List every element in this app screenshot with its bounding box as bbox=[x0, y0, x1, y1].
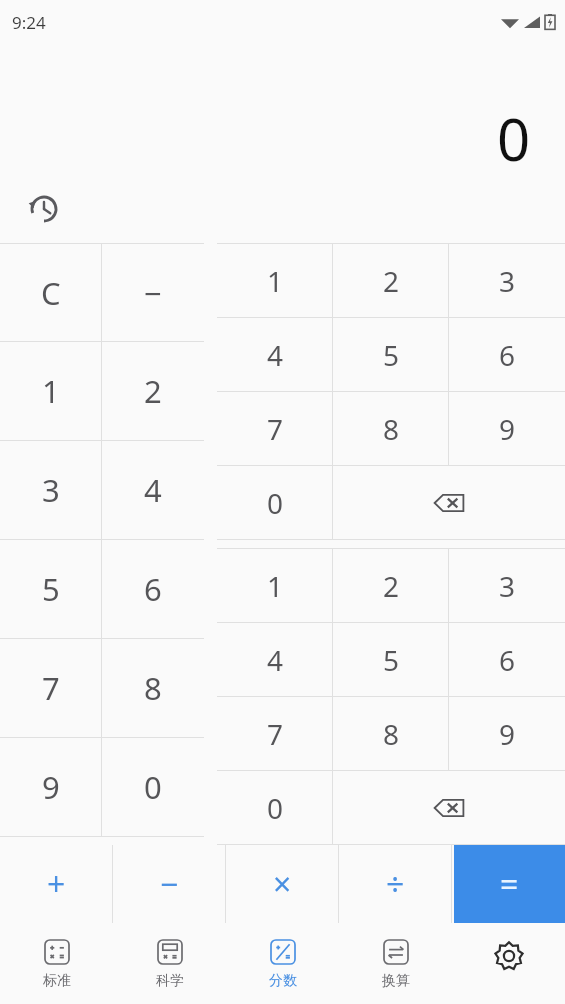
button[interactable]: 8 bbox=[333, 697, 449, 770]
button[interactable]: × bbox=[226, 845, 339, 923]
button[interactable]: 1 bbox=[217, 549, 333, 622]
button[interactable]: 3 bbox=[0, 441, 102, 539]
button[interactable]: − bbox=[102, 244, 204, 341]
staticText: 0 bbox=[144, 766, 162, 808]
staticText: 0 bbox=[267, 789, 284, 827]
button[interactable]: 4 bbox=[217, 623, 333, 696]
button[interactable]: 2 bbox=[333, 549, 449, 622]
button[interactable]: 3 bbox=[449, 244, 565, 317]
staticText: C bbox=[41, 272, 61, 314]
button[interactable]: 1 bbox=[0, 342, 102, 440]
staticText: 6 bbox=[144, 568, 162, 610]
staticText: 2 bbox=[383, 567, 400, 605]
button[interactable]: 3 bbox=[449, 549, 565, 622]
staticText: 6 bbox=[499, 641, 516, 679]
staticText: 1 bbox=[42, 370, 60, 412]
staticText: − bbox=[144, 272, 162, 314]
staticText: × bbox=[273, 862, 292, 906]
button[interactable]: 9 bbox=[0, 738, 102, 836]
button[interactable]: 5 bbox=[333, 623, 449, 696]
staticText: 7 bbox=[267, 410, 284, 448]
button[interactable]: + bbox=[0, 845, 113, 923]
button[interactable]: = bbox=[454, 845, 565, 923]
staticText: 4 bbox=[267, 641, 284, 679]
button[interactable]: − bbox=[113, 845, 226, 923]
staticText: 9 bbox=[499, 715, 516, 753]
staticText: 1 bbox=[267, 567, 284, 605]
button[interactable]: 7 bbox=[0, 639, 102, 737]
button[interactable]: Settings bbox=[452, 923, 565, 1004]
staticText: 3 bbox=[42, 469, 60, 511]
button[interactable]: 8 bbox=[102, 639, 204, 737]
button[interactable]: 标准 bbox=[0, 923, 113, 1004]
staticText: 0 bbox=[267, 484, 284, 522]
staticText: 9 bbox=[499, 410, 516, 448]
staticText: 8 bbox=[144, 667, 162, 709]
button[interactable]: 2 bbox=[102, 342, 204, 440]
staticText: 1 bbox=[267, 262, 284, 300]
button[interactable]: 0 bbox=[217, 466, 333, 539]
staticText: 分数 bbox=[269, 972, 297, 990]
staticText: 9 bbox=[42, 766, 60, 808]
staticText: 3 bbox=[499, 262, 516, 300]
staticText: 9:24 bbox=[12, 11, 46, 34]
staticText: 8 bbox=[383, 410, 400, 448]
button[interactable]: 6 bbox=[449, 318, 565, 391]
button[interactable]: 7 bbox=[217, 392, 333, 465]
button[interactable]: Backspace bbox=[333, 771, 565, 844]
staticText: 科学 bbox=[156, 972, 184, 990]
button[interactable]: 分数 bbox=[226, 923, 339, 1004]
staticText: 7 bbox=[267, 715, 284, 753]
staticText: 4 bbox=[267, 336, 284, 374]
button[interactable]: 2 bbox=[333, 244, 449, 317]
button[interactable]: 0 bbox=[217, 771, 333, 844]
staticText: − bbox=[160, 862, 179, 906]
button[interactable]: 9 bbox=[449, 392, 565, 465]
button[interactable]: Backspace bbox=[333, 466, 565, 539]
button[interactable]: 4 bbox=[102, 441, 204, 539]
staticText: 5 bbox=[383, 336, 400, 374]
button[interactable]: C bbox=[0, 244, 102, 341]
staticText: 0 bbox=[497, 99, 531, 178]
button[interactable]: 7 bbox=[217, 697, 333, 770]
staticText: ÷ bbox=[386, 862, 405, 906]
staticText: = bbox=[500, 862, 519, 906]
staticText: + bbox=[47, 862, 66, 906]
button[interactable]: ÷ bbox=[339, 845, 452, 923]
staticText: 3 bbox=[499, 567, 516, 605]
staticText: 5 bbox=[383, 641, 400, 679]
staticText: 4 bbox=[144, 469, 162, 511]
button[interactable]: 6 bbox=[102, 540, 204, 638]
button[interactable]: 8 bbox=[333, 392, 449, 465]
button[interactable]: History bbox=[26, 191, 62, 227]
button[interactable]: 5 bbox=[0, 540, 102, 638]
staticText: 2 bbox=[144, 370, 162, 412]
button[interactable]: 科学 bbox=[113, 923, 226, 1004]
button[interactable]: 0 bbox=[102, 738, 204, 836]
staticText: 换算 bbox=[382, 972, 410, 990]
staticText: 6 bbox=[499, 336, 516, 374]
staticText: 7 bbox=[42, 667, 60, 709]
staticText: 2 bbox=[383, 262, 400, 300]
button[interactable]: 5 bbox=[333, 318, 449, 391]
button[interactable]: 换算 bbox=[339, 923, 452, 1004]
staticText: 5 bbox=[42, 568, 60, 610]
staticText: 标准 bbox=[43, 972, 71, 990]
button[interactable]: 6 bbox=[449, 623, 565, 696]
button[interactable]: 9 bbox=[449, 697, 565, 770]
button[interactable]: 1 bbox=[217, 244, 333, 317]
staticText: 8 bbox=[383, 715, 400, 753]
button[interactable]: 4 bbox=[217, 318, 333, 391]
